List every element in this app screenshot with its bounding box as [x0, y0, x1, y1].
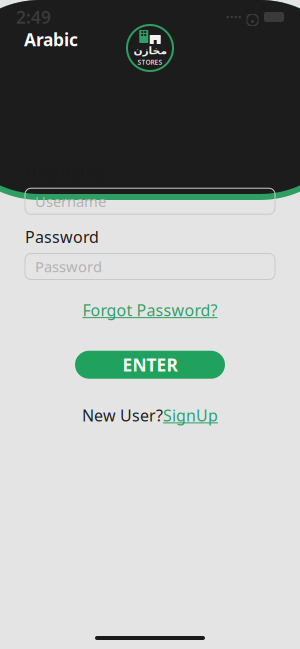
staticText: Arabic: [24, 28, 78, 51]
staticText: مخازن: [133, 44, 167, 57]
staticText: Password: [35, 257, 102, 276]
staticText: Forgot Password?: [82, 299, 217, 321]
staticText: Password: [25, 226, 99, 247]
button[interactable]: ENTER: [75, 351, 225, 379]
staticText: SignUp: [163, 405, 218, 426]
staticText: 2:49: [16, 5, 51, 28]
staticText: ENTER: [122, 353, 177, 376]
button[interactable]: SignUp: [163, 405, 218, 426]
button[interactable]: Forgot Password?: [76, 295, 223, 325]
staticText: Username: [35, 191, 106, 211]
staticText: STORES: [137, 58, 162, 66]
staticText: New User?: [82, 405, 163, 426]
